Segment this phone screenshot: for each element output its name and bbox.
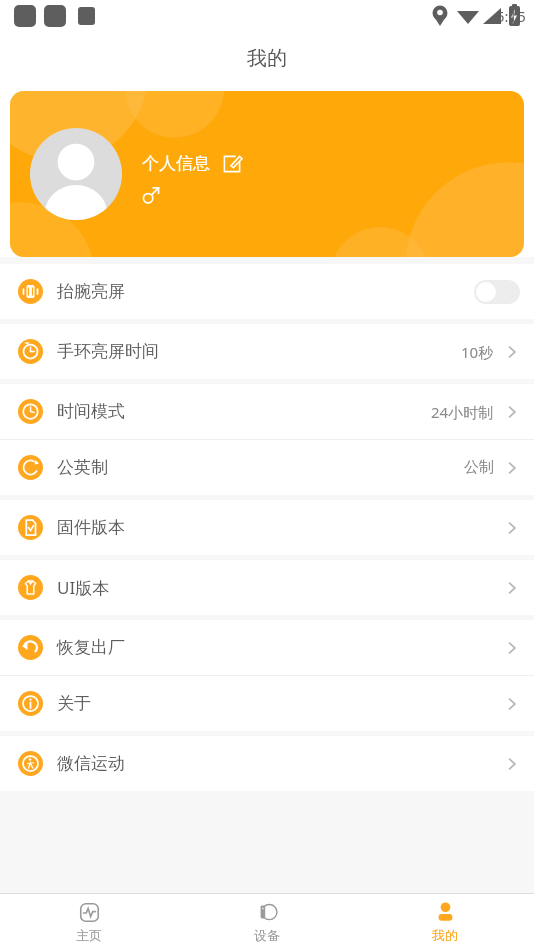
button[interactable]: 微信运动: [0, 736, 534, 791]
staticText: 抬腕亮屏: [57, 281, 125, 302]
button[interactable]: 恢复出厂: [0, 620, 534, 675]
staticText: 设备: [254, 927, 280, 943]
staticText: 个人信息: [142, 153, 210, 174]
staticText: UI版本: [57, 576, 110, 599]
staticText: 微信运动: [57, 753, 125, 774]
button[interactable]: 主页: [0, 894, 178, 950]
staticText: 关于: [57, 693, 91, 714]
button[interactable]: 个人信息: [10, 91, 524, 257]
staticText: 我的: [247, 46, 287, 71]
staticText: 公英制: [57, 457, 108, 478]
button[interactable]: 抬腕亮屏开关: [474, 280, 520, 304]
staticText: 公制: [464, 458, 494, 477]
button[interactable]: 公英制: [0, 440, 534, 495]
button[interactable]: 我的: [356, 894, 534, 950]
staticText: 10秒: [461, 342, 494, 362]
button[interactable]: 关于: [0, 676, 534, 731]
staticText: 24小时制: [431, 402, 494, 422]
staticText: 时间模式: [57, 401, 125, 422]
staticText: 手环亮屏时间: [57, 341, 159, 362]
button[interactable]: 抬腕亮屏: [0, 264, 534, 319]
button[interactable]: UI版本: [0, 560, 534, 615]
staticText: 主页: [76, 927, 102, 943]
button[interactable]: 设备: [178, 894, 356, 950]
staticText: 恢复出厂: [57, 637, 125, 658]
staticText: 5:15: [496, 6, 526, 26]
button[interactable]: 时间模式: [0, 384, 534, 439]
button[interactable]: 编辑: [222, 154, 242, 174]
button[interactable]: 手环亮屏时间: [0, 324, 534, 379]
staticText: 我的: [432, 927, 458, 943]
staticText: 固件版本: [57, 517, 125, 538]
button[interactable]: 固件版本: [0, 500, 534, 555]
